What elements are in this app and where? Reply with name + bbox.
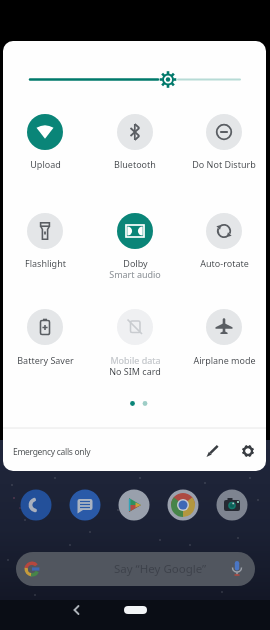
button[interactable] bbox=[23, 110, 67, 154]
button[interactable] bbox=[23, 209, 67, 253]
staticText: Auto-rotate bbox=[200, 257, 249, 269]
staticText: No SIM card bbox=[109, 365, 161, 377]
button[interactable] bbox=[200, 438, 226, 464]
staticText: Flashlight bbox=[25, 257, 66, 269]
button[interactable] bbox=[235, 438, 261, 464]
staticText: Smart audio bbox=[109, 268, 161, 280]
staticText: Bluetooth bbox=[114, 158, 156, 170]
staticText: Dolby bbox=[123, 257, 148, 269]
staticText: Do Not Disturb bbox=[192, 158, 256, 170]
button[interactable] bbox=[202, 305, 246, 349]
staticText: Upload bbox=[30, 158, 61, 170]
button[interactable]: Say “Hey Google” bbox=[16, 552, 255, 586]
staticText: Say “Hey Google” bbox=[114, 561, 207, 577]
button[interactable] bbox=[113, 305, 157, 349]
staticText: Emergency calls only bbox=[13, 446, 91, 458]
button[interactable] bbox=[113, 110, 157, 154]
button[interactable] bbox=[202, 209, 246, 253]
button[interactable] bbox=[202, 110, 246, 154]
button[interactable] bbox=[23, 305, 67, 349]
button[interactable] bbox=[113, 209, 157, 253]
staticText: Mobile data bbox=[110, 354, 161, 366]
staticText: Airplane mode bbox=[193, 354, 256, 366]
staticText: Battery Saver bbox=[17, 354, 74, 366]
button[interactable]: Emergency calls only bbox=[13, 444, 143, 459]
